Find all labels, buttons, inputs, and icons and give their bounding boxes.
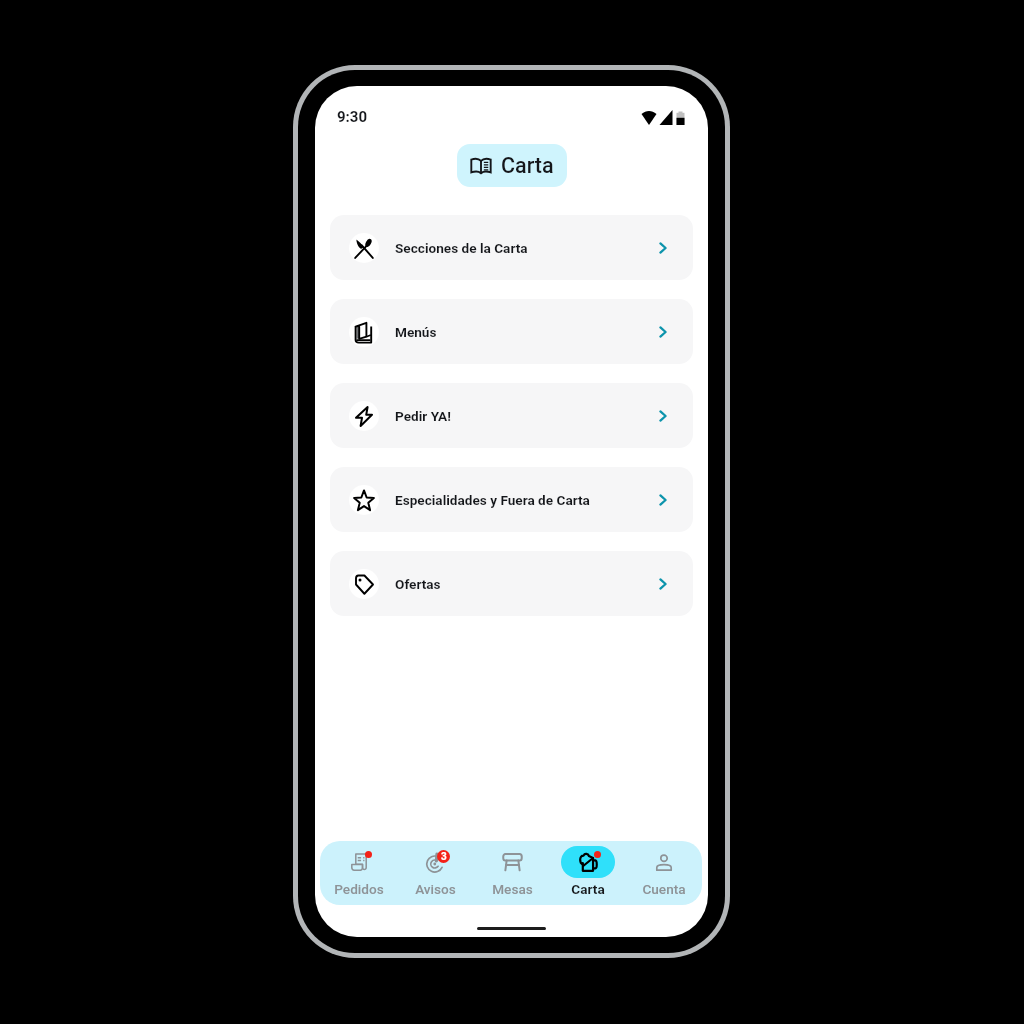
button[interactable]: Especialidades y Fuera de Carta [330,467,693,532]
button[interactable]: Pedir YA! [330,383,693,448]
button[interactable]: Menús [330,299,693,364]
staticText: 9:30 [337,108,368,126]
button[interactable]: Avisos [397,841,474,905]
staticText: 3 [441,851,447,863]
button[interactable]: Secciones de la Carta [330,215,693,280]
staticText: Avisos [415,881,456,897]
staticText: Pedidos [334,881,384,897]
staticText: Pedir YA! [395,408,451,424]
staticText: Cuenta [642,881,686,897]
staticText: Carta [501,153,554,178]
button[interactable]: Pedidos [320,841,397,905]
staticText: Mesas [492,881,533,897]
staticText: Especialidades y Fuera de Carta [395,492,590,508]
button[interactable]: Carta [457,144,567,187]
button[interactable]: Cuenta [626,841,702,905]
button[interactable]: Ofertas [330,551,693,616]
staticText: Ofertas [395,576,441,592]
staticText: Carta [571,881,605,897]
staticText: Menús [395,324,437,340]
button[interactable]: Mesas [474,841,550,905]
staticText: Secciones de la Carta [395,240,528,256]
button[interactable]: Carta [550,841,626,905]
